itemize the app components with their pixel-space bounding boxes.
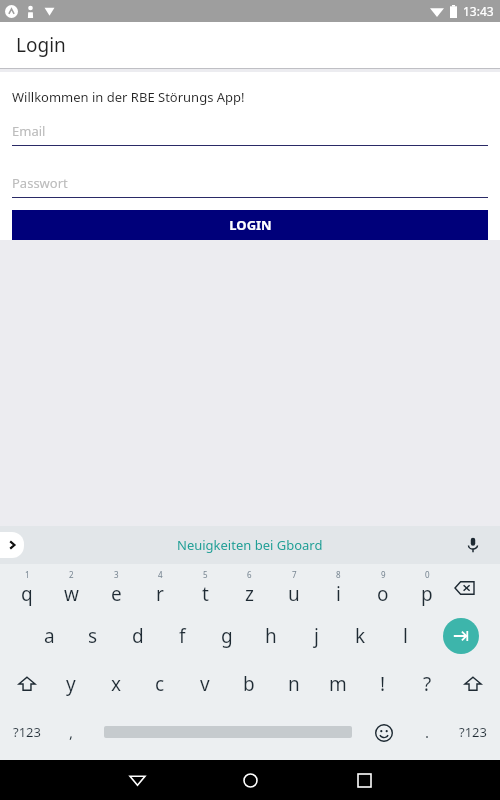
button[interactable]: Enter (443, 618, 479, 654)
button[interactable]: k (340, 612, 380, 660)
button[interactable]: 6 (229, 564, 269, 612)
staticText: m (329, 671, 347, 697)
staticText: Email (12, 122, 46, 140)
button[interactable]: 7 (274, 564, 314, 612)
button[interactable]: Passwort (12, 174, 488, 198)
staticText: x (111, 671, 122, 697)
button[interactable]: Backspace (450, 574, 478, 602)
button[interactable]: h (251, 612, 291, 660)
button[interactable]: 2 (51, 564, 91, 612)
staticText: i (336, 581, 341, 607)
button[interactable]: Back (120, 763, 154, 797)
button[interactable]: n (274, 660, 314, 708)
button[interactable]: Email (12, 122, 488, 146)
button[interactable]: ! (363, 660, 403, 708)
staticText: , (69, 722, 74, 742)
staticText: a (44, 623, 55, 649)
button[interactable]: l (385, 612, 425, 660)
staticText: g (221, 623, 233, 649)
button[interactable]: , (51, 708, 91, 756)
staticText: ?123 (459, 723, 487, 741)
button[interactable]: x (96, 660, 136, 708)
button[interactable]: j (296, 612, 336, 660)
button[interactable]: Expand suggestions (0, 532, 24, 558)
staticText: 13:43 (463, 3, 494, 19)
button[interactable]: LOGIN (12, 210, 488, 240)
staticText: 0 (425, 569, 430, 580)
staticText: . (425, 722, 430, 742)
button[interactable]: 4 (140, 564, 180, 612)
staticText: h (265, 623, 277, 649)
staticText: r (156, 581, 164, 607)
staticText: k (355, 623, 366, 649)
button[interactable]: g (207, 612, 247, 660)
staticText: t (202, 581, 209, 607)
button[interactable]: Recents (347, 763, 381, 797)
button[interactable]: 3 (96, 564, 136, 612)
staticText: 3 (114, 569, 119, 580)
staticText: q (21, 581, 33, 607)
button[interactable]: b (229, 660, 269, 708)
button[interactable]: ?123 (7, 708, 47, 756)
staticText: LOGIN (229, 216, 272, 234)
button[interactable]: s (73, 612, 113, 660)
staticText: 8 (336, 569, 341, 580)
staticText: y (66, 671, 76, 697)
staticText: f (179, 623, 186, 649)
button[interactable]: 1 (7, 564, 47, 612)
staticText: 9 (381, 569, 386, 580)
button[interactable]: y (51, 660, 91, 708)
staticText: Passwort (12, 174, 68, 192)
button[interactable]: 8 (318, 564, 358, 612)
staticText: p (421, 581, 433, 607)
button[interactable]: c (140, 660, 180, 708)
staticText: d (132, 623, 144, 649)
button[interactable]: ? (407, 660, 447, 708)
staticText: n (288, 671, 300, 697)
staticText: 7 (292, 569, 297, 580)
button[interactable]: 9 (363, 564, 403, 612)
button[interactable]: d (118, 612, 158, 660)
button[interactable]: v (185, 660, 225, 708)
staticText: ?123 (13, 723, 41, 741)
staticText: 4 (158, 569, 163, 580)
staticText: u (288, 581, 300, 607)
button[interactable]: 5 (185, 564, 225, 612)
staticText: e (111, 581, 122, 607)
staticText: 6 (247, 569, 252, 580)
staticText: 2 (69, 569, 74, 580)
button[interactable]: Shift (455, 666, 491, 702)
staticText: v (200, 671, 210, 697)
button[interactable]: f (162, 612, 202, 660)
button[interactable]: Home (233, 763, 267, 797)
staticText: s (88, 623, 98, 649)
staticText: ? (423, 671, 432, 697)
staticText: w (64, 581, 79, 607)
staticText: 5 (203, 569, 208, 580)
staticText: j (314, 623, 319, 649)
staticText: b (243, 671, 255, 697)
button[interactable]: a (29, 612, 69, 660)
staticText: l (403, 623, 408, 649)
staticText: ! (380, 671, 386, 697)
staticText: 1 (25, 569, 30, 580)
button[interactable]: ?123 (453, 708, 493, 756)
button[interactable]: m (318, 660, 358, 708)
staticText: o (377, 581, 389, 607)
button[interactable]: Voice input (462, 534, 484, 556)
button[interactable]: . (407, 708, 447, 756)
button[interactable]: 0 (407, 564, 447, 612)
staticText: Login (16, 32, 66, 58)
staticText: Neuigkeiten bei Gboard (177, 536, 323, 554)
staticText: c (155, 671, 165, 697)
button[interactable]: Emoji (372, 721, 396, 745)
staticText: z (245, 581, 254, 607)
staticText: Willkommen in der RBE Störungs App! (12, 88, 245, 106)
button[interactable]: Shift (9, 666, 45, 702)
